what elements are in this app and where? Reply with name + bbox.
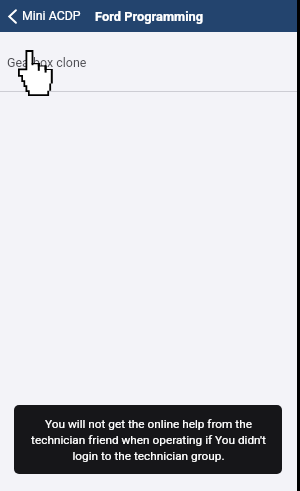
button[interactable]: Gearbox clone xyxy=(0,32,300,92)
staticText: Gearbox clone xyxy=(7,55,87,70)
other: Back xyxy=(8,9,17,24)
staticText: You will not get the online help from th… xyxy=(26,417,271,463)
staticText: Ford Programming xyxy=(95,9,204,24)
staticText: Mini ACDP xyxy=(22,9,81,23)
button[interactable]: Back xyxy=(0,0,87,32)
